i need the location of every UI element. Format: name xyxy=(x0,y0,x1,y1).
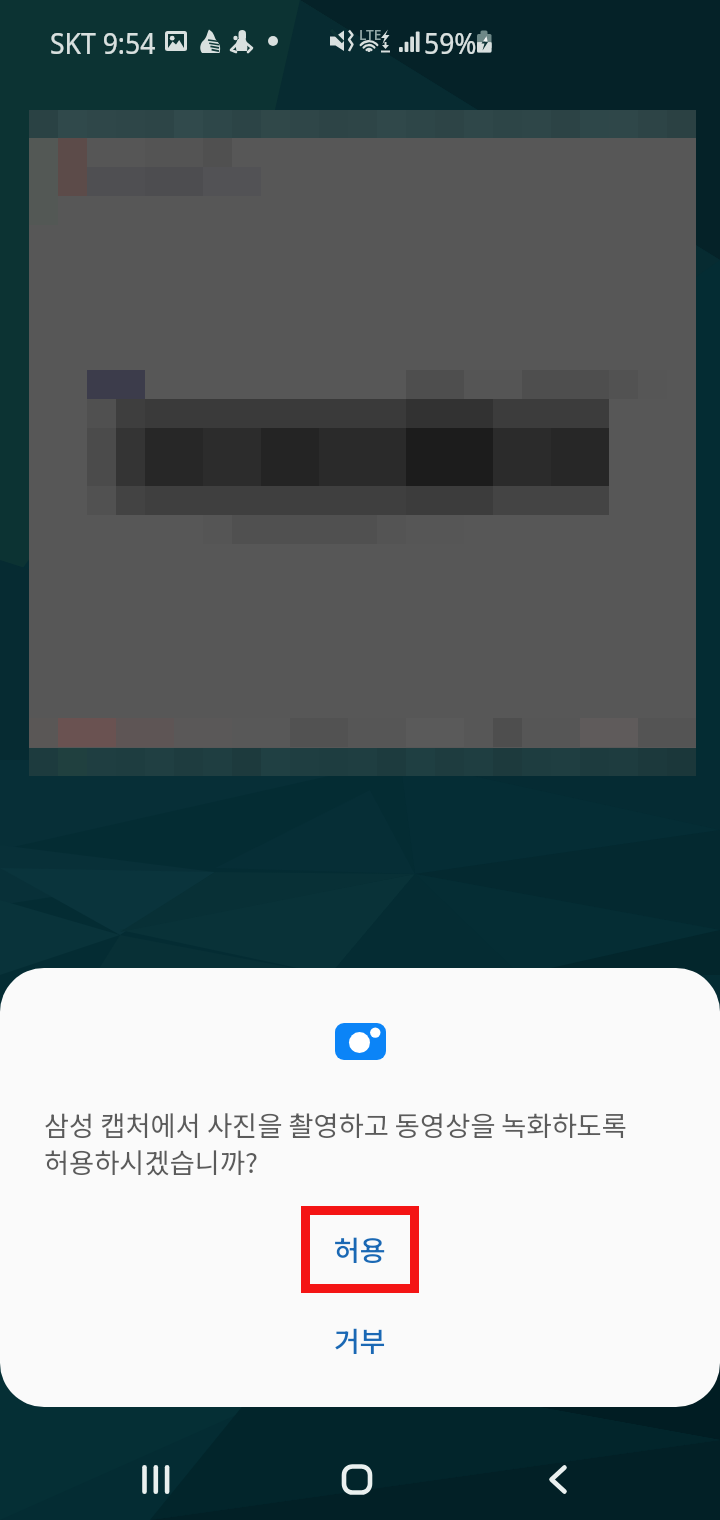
staticText: LTE xyxy=(359,24,382,44)
staticText: 삼성 캡처에서 사진을 촬영하고 동영상을 녹화하도록 허용하시겠습니까? xyxy=(44,1104,628,1181)
staticText: 허용 xyxy=(334,1229,386,1270)
button[interactable]: Back xyxy=(503,1423,613,1520)
staticText: 59% xyxy=(424,24,477,62)
button[interactable]: 허용 xyxy=(310,1215,410,1284)
staticText: SKT 9:54 xyxy=(50,24,156,62)
staticText: 거부 xyxy=(334,1320,386,1361)
button[interactable]: 거부 xyxy=(280,1312,440,1368)
button[interactable]: Recent apps xyxy=(103,1423,213,1520)
button[interactable]: Home xyxy=(302,1423,412,1520)
